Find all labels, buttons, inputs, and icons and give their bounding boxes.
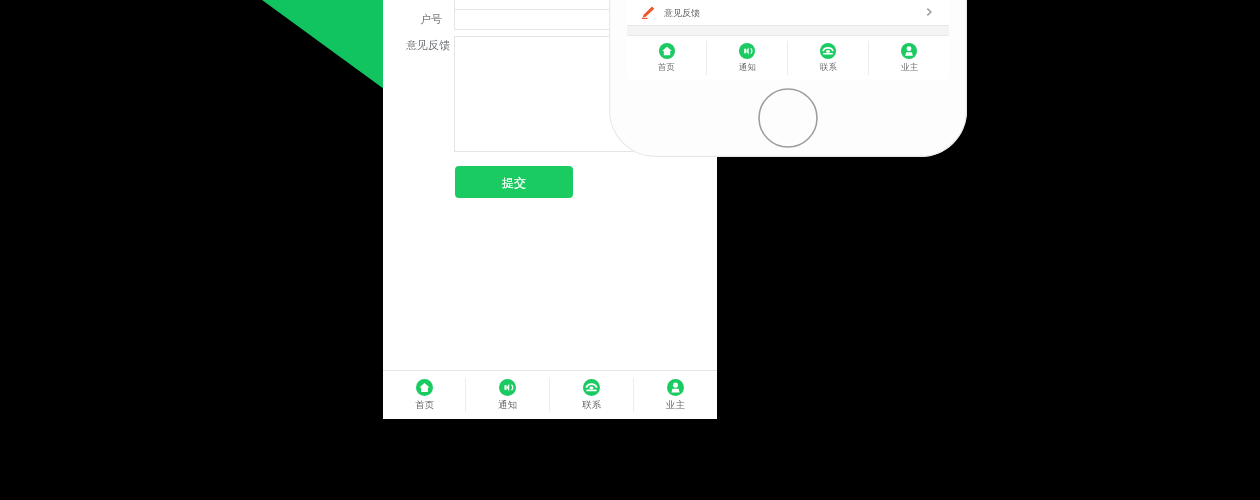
staticText: 提交 <box>502 175 526 190</box>
staticText: 户号 <box>420 12 442 26</box>
staticText: 首页 <box>415 399 434 411</box>
button[interactable]: 提交 <box>455 166 573 198</box>
button[interactable]: 首页 <box>383 371 465 419</box>
button[interactable] <box>454 9 702 30</box>
button[interactable]: 首页 <box>627 36 706 79</box>
staticText: 首页 <box>658 62 675 73</box>
button[interactable]: 业主 <box>869 36 949 79</box>
button[interactable]: 业主 <box>634 371 717 419</box>
staticText: 意见反馈 <box>664 7 700 18</box>
staticText: 通知 <box>498 399 517 411</box>
staticText: 联系 <box>820 62 837 73</box>
staticText: 业主 <box>666 399 685 411</box>
button[interactable]: Home button <box>758 88 818 148</box>
staticText: 通知 <box>739 62 756 73</box>
button[interactable]: 意见反馈 <box>627 0 949 25</box>
staticText: 业主 <box>901 62 918 73</box>
staticText: 联系 <box>582 399 601 411</box>
button[interactable]: 联系 <box>788 36 868 79</box>
button[interactable]: 联系 <box>550 371 633 419</box>
button[interactable]: 通知 <box>466 371 549 419</box>
staticText: 意见反馈 <box>406 38 450 52</box>
button[interactable] <box>454 36 702 152</box>
button[interactable]: 通知 <box>707 36 787 79</box>
